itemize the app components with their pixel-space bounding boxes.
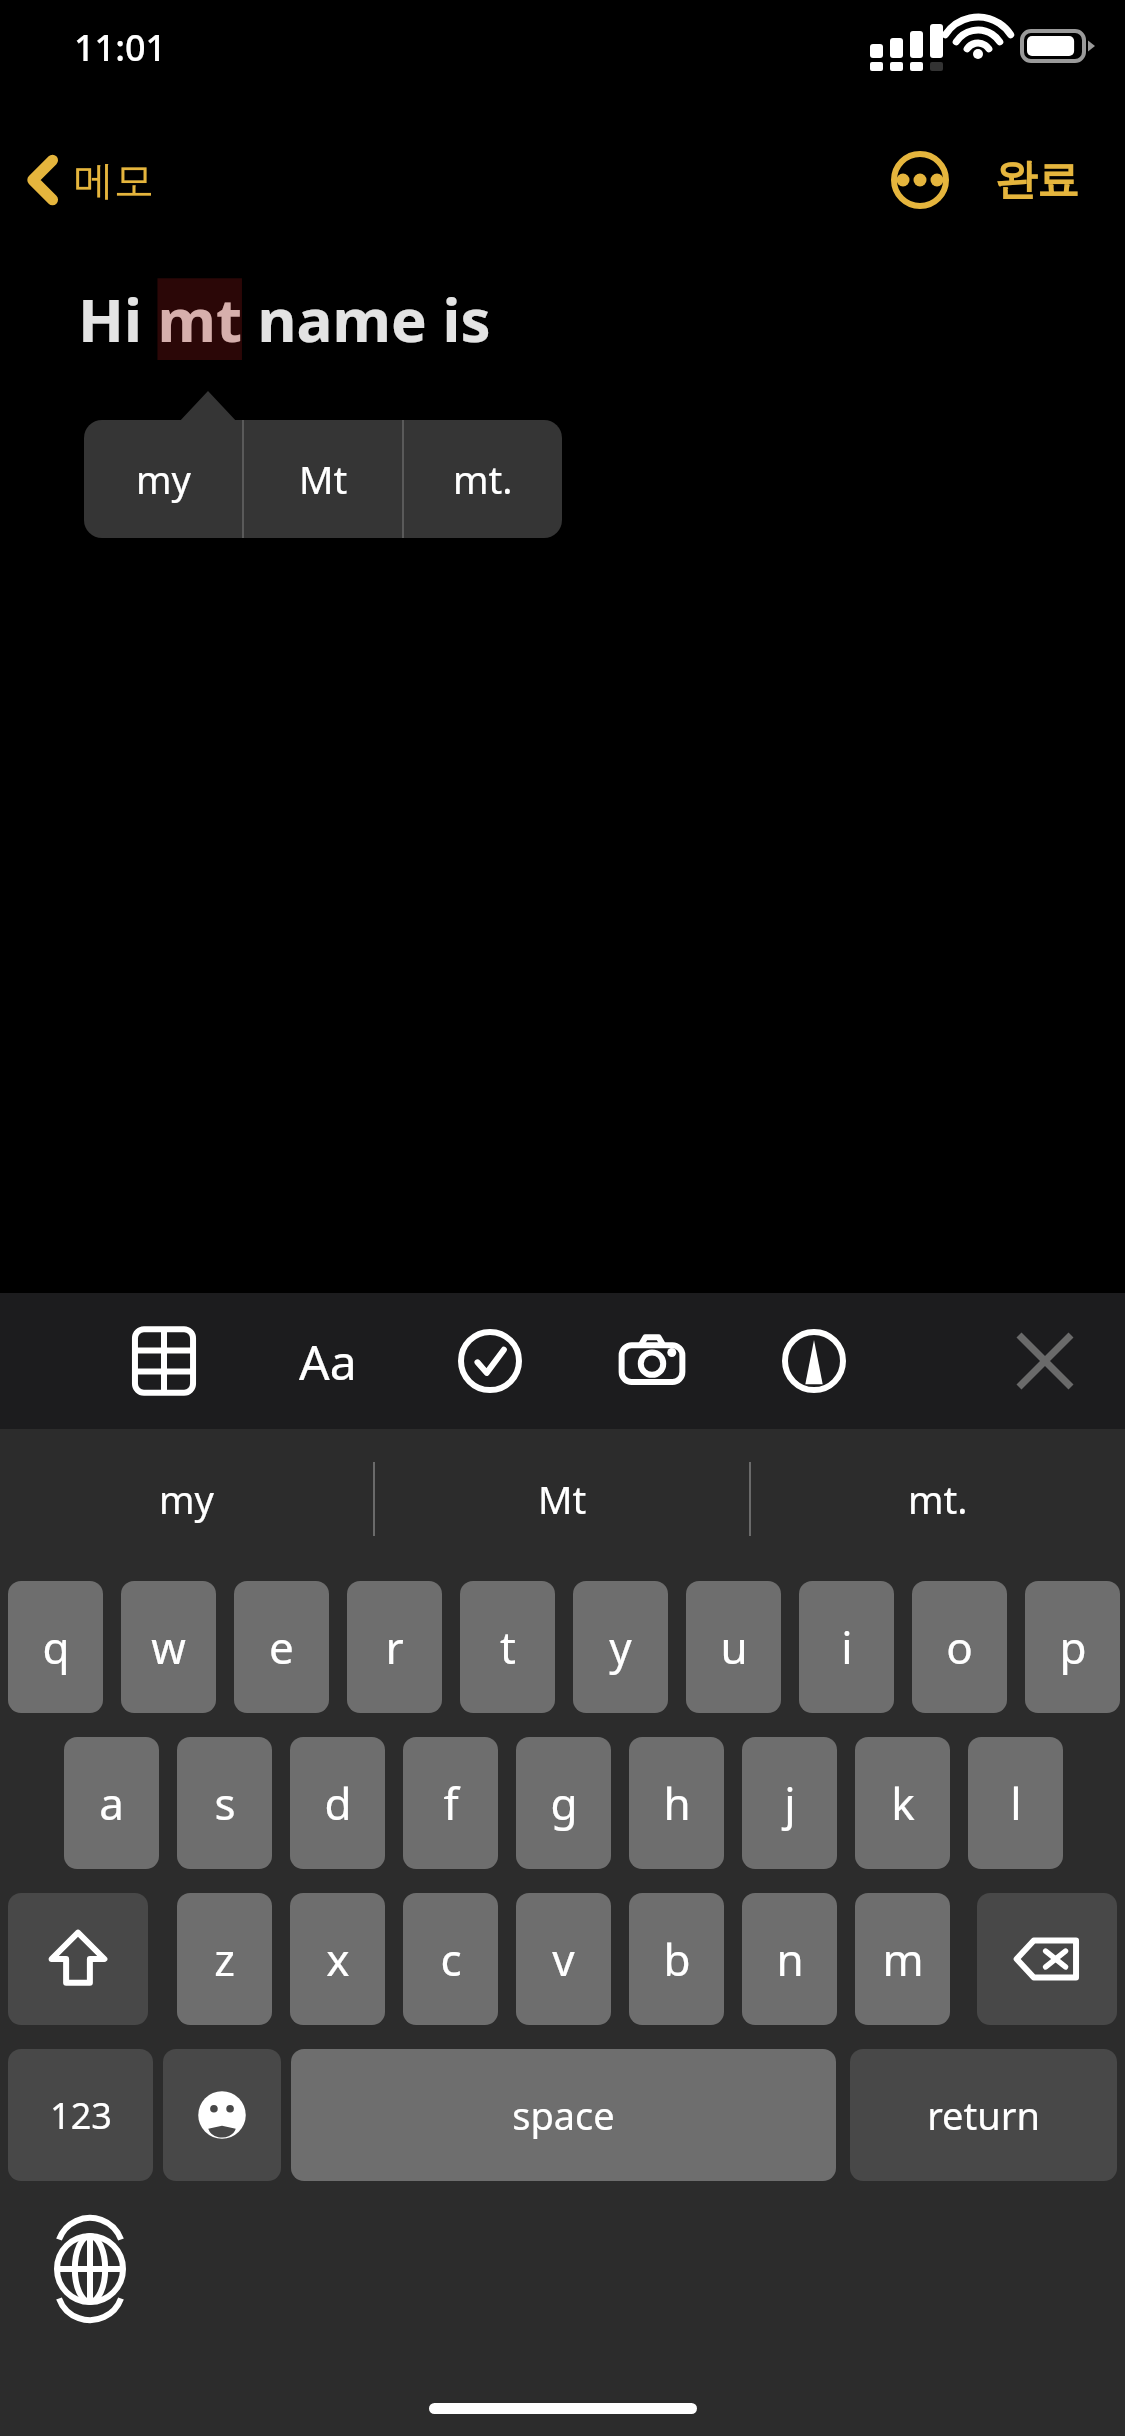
staticText: y (609, 1617, 632, 1677)
button[interactable]: return (850, 2049, 1117, 2181)
button[interactable]: Mt (375, 1429, 749, 1569)
staticText: c (440, 1929, 462, 1989)
button[interactable]: y (573, 1581, 668, 1713)
button[interactable]: o (912, 1581, 1007, 1713)
button[interactable]: n (742, 1893, 837, 2025)
button[interactable]: p (1025, 1581, 1120, 1713)
button[interactable]: i (799, 1581, 894, 1713)
button[interactable]: Checklist (435, 1293, 545, 1429)
staticText: Mt (299, 453, 348, 505)
button[interactable]: Table (109, 1293, 219, 1429)
button[interactable]: h (629, 1737, 724, 1869)
button[interactable]: 완료 (989, 144, 1085, 217)
staticText: e (269, 1617, 294, 1677)
button[interactable]: t (460, 1581, 555, 1713)
button[interactable]: c (403, 1893, 498, 2025)
button[interactable]: my (84, 420, 242, 538)
button[interactable]: e (234, 1581, 329, 1713)
staticText: return (927, 2089, 1040, 2141)
button[interactable]: Mt (244, 420, 402, 538)
button[interactable]: mt. (751, 1429, 1125, 1569)
button[interactable]: b (629, 1893, 724, 2025)
button[interactable]: r (347, 1581, 442, 1713)
button[interactable]: Format (273, 1293, 383, 1429)
button[interactable]: m (855, 1893, 950, 2025)
button[interactable]: Camera (597, 1293, 707, 1429)
button[interactable]: More options (881, 141, 959, 219)
button[interactable]: q (8, 1581, 103, 1713)
staticText: space (512, 2089, 615, 2141)
button[interactable]: z (177, 1893, 272, 2025)
staticText: Mt (538, 1473, 587, 1525)
button[interactable]: w (121, 1581, 216, 1713)
staticText: 메모 (74, 155, 154, 205)
staticText: x (326, 1929, 350, 1989)
staticText: t (500, 1617, 516, 1677)
staticText: s (214, 1773, 236, 1833)
staticText: g (550, 1773, 578, 1833)
staticText: Hi mt name is (78, 278, 491, 360)
staticText: j (784, 1773, 796, 1833)
staticText: q (42, 1617, 70, 1677)
staticText: a (99, 1773, 124, 1833)
button[interactable]: Change keyboard (40, 2219, 140, 2319)
staticText: b (663, 1929, 691, 1989)
button[interactable]: v (516, 1893, 611, 2025)
staticText: z (214, 1929, 235, 1989)
button[interactable]: f (403, 1737, 498, 1869)
button[interactable]: mt. (404, 420, 562, 538)
staticText: u (720, 1617, 748, 1677)
staticText: w (151, 1617, 186, 1677)
button[interactable]: x (290, 1893, 385, 2025)
button[interactable]: Shift (8, 1893, 148, 2025)
button[interactable]: d (290, 1737, 385, 1869)
button[interactable]: k (855, 1737, 950, 1869)
staticText: mt. (908, 1473, 968, 1525)
button[interactable]: g (516, 1737, 611, 1869)
staticText: n (776, 1929, 804, 1989)
staticText: 완료 (995, 154, 1079, 207)
button[interactable]: my (0, 1429, 373, 1569)
staticText: l (1010, 1773, 1022, 1833)
button[interactable]: 메모 (18, 146, 162, 214)
staticText: my (136, 453, 191, 505)
button[interactable]: a (64, 1737, 159, 1869)
button[interactable]: Aa (273, 1293, 383, 1429)
button[interactable]: Backspace (977, 1893, 1117, 2025)
button[interactable]: space (291, 2049, 836, 2181)
staticText: v (552, 1929, 575, 1989)
staticText: p (1059, 1617, 1087, 1677)
staticText: k (891, 1773, 915, 1833)
staticText: 123 (50, 2091, 112, 2140)
staticText: mt. (453, 453, 513, 505)
staticText: o (946, 1617, 973, 1677)
button[interactable]: Emoji (163, 2049, 281, 2181)
staticText: d (324, 1773, 352, 1833)
button[interactable]: Markup (759, 1293, 869, 1429)
staticText: f (443, 1773, 459, 1833)
button[interactable]: l (968, 1737, 1063, 1869)
button[interactable]: 123 (8, 2049, 153, 2181)
staticText: r (385, 1617, 404, 1677)
button[interactable]: Close keyboard (1005, 1321, 1085, 1401)
staticText: Aa (299, 1329, 357, 1394)
staticText: i (841, 1617, 853, 1677)
button[interactable]: u (686, 1581, 781, 1713)
button[interactable]: s (177, 1737, 272, 1869)
staticText: 11:01 (74, 23, 167, 72)
staticText: m (882, 1929, 924, 1989)
staticText: h (663, 1773, 691, 1833)
button[interactable]: j (742, 1737, 837, 1869)
staticText: my (159, 1473, 214, 1525)
